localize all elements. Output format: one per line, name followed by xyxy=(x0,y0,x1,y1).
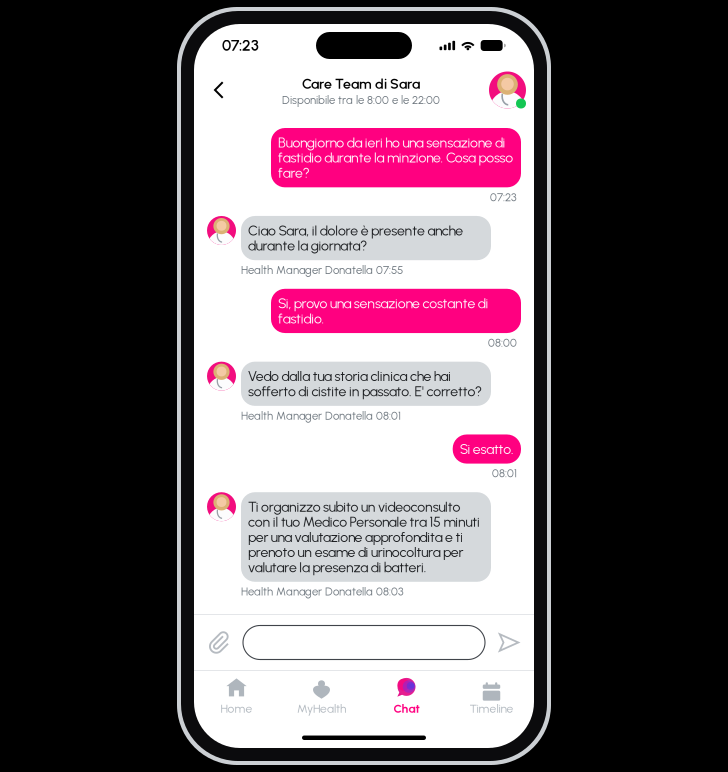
button[interactable]: Home xyxy=(194,669,279,721)
button[interactable]: Timeline xyxy=(449,669,534,721)
staticText: MyHealth xyxy=(297,701,346,716)
button[interactable]: Back xyxy=(203,74,235,106)
staticText: Disponibile tra le 8:00 e le 22:00 xyxy=(282,93,440,107)
button[interactable]: Message input xyxy=(243,625,485,659)
staticText: Health Manager Donatella 07:55 xyxy=(241,263,403,277)
staticText: Vedo dalla tua storia clinica che hai so… xyxy=(248,369,482,399)
staticText: Timeline xyxy=(469,701,513,716)
button[interactable]: Send xyxy=(497,630,521,654)
staticText: 07:23 xyxy=(222,36,259,55)
staticText: Care Team di Sara xyxy=(302,75,420,92)
button[interactable]: Chat xyxy=(364,669,449,721)
staticText: 08:01 xyxy=(492,467,517,480)
staticText: Chat xyxy=(393,701,419,716)
staticText: Health Manager Donatella 08:03 xyxy=(241,585,404,598)
staticText: Health Manager Donatella 08:01 xyxy=(241,409,401,422)
staticText: Si, provo una sensazione costante di fas… xyxy=(278,296,488,326)
staticText: Home xyxy=(220,701,252,716)
button[interactable]: Attach file xyxy=(207,629,231,655)
staticText: 07:23 xyxy=(490,190,517,204)
staticText: Si esatto. xyxy=(460,441,514,457)
staticText: 08:00 xyxy=(488,336,517,350)
button[interactable]: Care team profile xyxy=(489,71,526,108)
staticText: Ciao Sara, il dolore è presente anche du… xyxy=(248,223,463,253)
button[interactable]: MyHealth xyxy=(279,669,364,721)
staticText: Ti organizzo subito un videoconsulto con… xyxy=(248,499,480,575)
staticText: Buongiorno da ieri ho una sensazione di … xyxy=(278,135,513,180)
